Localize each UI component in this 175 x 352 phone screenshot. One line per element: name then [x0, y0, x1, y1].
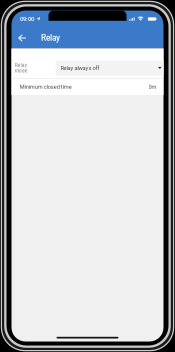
staticText: Minimum closed time: [20, 83, 72, 90]
button[interactable]: Back: [11, 27, 32, 48]
button[interactable]: Minimum closed time: [11, 78, 163, 95]
staticText: 09:00: [20, 15, 34, 23]
staticText: Relay mode: [15, 62, 28, 74]
button[interactable]: Relay mode: [11, 48, 163, 78]
staticText: Relay always off: [60, 65, 99, 71]
staticText: 0m: [148, 83, 156, 90]
staticText: Relay: [41, 33, 60, 43]
